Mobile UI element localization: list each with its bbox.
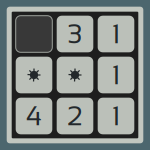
staticText: 1 <box>112 19 120 49</box>
button[interactable]: 1 <box>98 16 134 52</box>
staticText: 3 <box>67 19 82 49</box>
button[interactable]: 1 <box>98 98 134 134</box>
button[interactable] <box>57 57 93 93</box>
staticText: 4 <box>26 101 42 131</box>
staticText: 1 <box>112 60 120 90</box>
button[interactable]: 1 <box>98 57 134 93</box>
button[interactable]: 3 <box>57 16 93 52</box>
staticText: 1 <box>112 101 120 131</box>
button[interactable]: 4 <box>16 98 52 134</box>
button[interactable] <box>16 57 52 93</box>
button[interactable] <box>16 16 52 52</box>
button[interactable]: 2 <box>57 98 93 134</box>
staticText: 2 <box>67 101 82 131</box>
